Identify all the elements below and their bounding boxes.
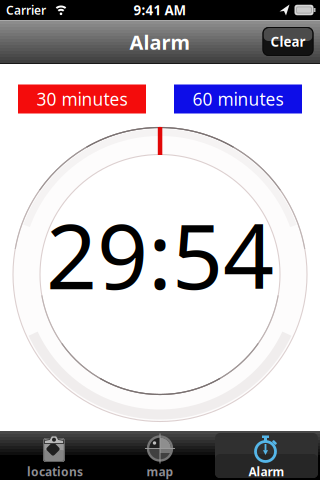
staticText: 30 minutes	[36, 87, 127, 110]
staticText: map	[146, 463, 173, 479]
button[interactable]: 60 minutes	[174, 84, 302, 113]
staticText: 9:41 AM	[133, 1, 186, 19]
staticText: 29:54	[46, 195, 274, 314]
staticText: Clear	[270, 33, 305, 50]
staticText: Alarm	[129, 29, 190, 55]
staticText: Carrier	[6, 2, 46, 18]
button[interactable]: 30 minutes	[18, 84, 146, 113]
button[interactable]: Alarm	[213, 431, 320, 480]
button[interactable]: Clear	[262, 27, 313, 56]
staticText: locations	[27, 463, 83, 479]
staticText: Alarm	[248, 463, 284, 479]
button[interactable]: map	[107, 431, 213, 480]
button[interactable]: locations	[0, 431, 107, 480]
staticText: 60 minutes	[192, 87, 283, 110]
